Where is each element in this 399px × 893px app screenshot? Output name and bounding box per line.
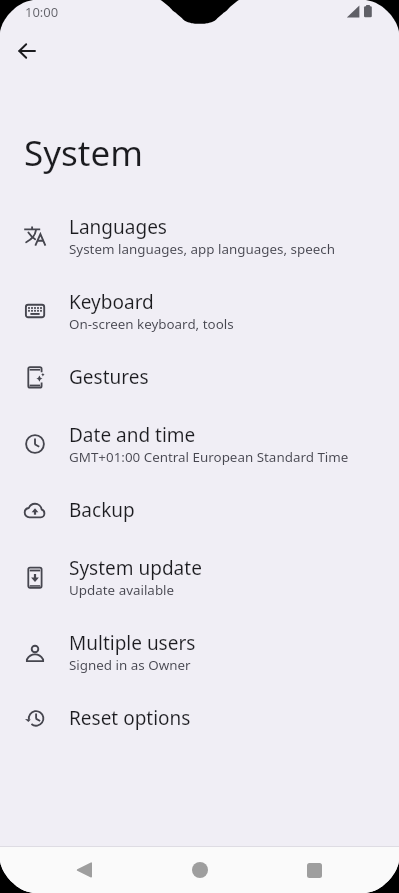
staticText: Multiple users [69,630,196,656]
button[interactable]: Home [142,847,257,893]
button[interactable]: Multiple users [0,614,399,689]
staticText: Signed in as Owner [69,656,191,674]
button[interactable]: Backup [0,481,399,539]
button[interactable]: Gestures [0,348,399,406]
staticText: On-screen keyboard, tools [69,315,234,333]
button[interactable]: Reset options [0,689,399,747]
staticText: Keyboard [69,289,154,315]
staticText: Date and time [69,422,196,448]
staticText: System [24,129,143,177]
staticText: System update [69,555,202,581]
staticText: Backup [69,497,135,523]
staticText: Languages [69,214,167,240]
staticText: System languages, app languages, speech [69,240,335,258]
button[interactable]: Back [3,27,51,75]
button[interactable]: Keyboard [0,273,399,348]
button[interactable]: Languages [0,198,399,273]
staticText: GMT+01:00 Central European Standard Time [69,448,349,466]
button[interactable]: Date and time [0,406,399,481]
staticText: 10:00 [25,3,59,21]
button[interactable]: Recent apps [257,847,372,893]
staticText: Gestures [69,364,149,390]
button[interactable]: Back [27,847,142,893]
button[interactable]: System update [0,539,399,614]
staticText: Reset options [69,705,191,731]
staticText: Update available [69,581,175,599]
